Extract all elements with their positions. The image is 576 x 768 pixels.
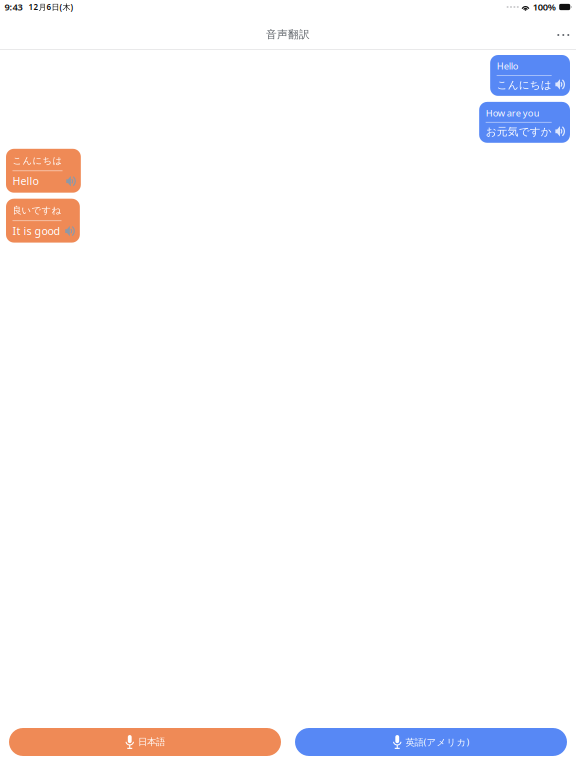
staticText: こんにちは [12, 155, 62, 166]
staticText: 良いですね [12, 205, 61, 216]
button[interactable]: Hello [490, 55, 570, 96]
staticText: 100% [533, 1, 556, 13]
staticText: 12月6日(木) [28, 2, 73, 12]
staticText: 音声翻訳 [266, 28, 310, 41]
staticText: Hello [12, 174, 38, 188]
staticText: How are you [486, 107, 540, 119]
button[interactable]: 英語(アメリカ) [295, 728, 567, 756]
button[interactable]: こんにちは [6, 149, 81, 193]
staticText: 英語(アメリカ) [406, 736, 470, 748]
staticText: It is good [12, 224, 60, 238]
button[interactable]: 日本語 [9, 728, 281, 756]
button[interactable]: More options [547, 23, 576, 46]
staticText: 日本語 [138, 736, 165, 748]
staticText: 9:43 [4, 1, 22, 13]
staticText: Hello [497, 60, 519, 72]
button[interactable]: How are you [479, 102, 570, 143]
staticText: お元気ですか [486, 125, 552, 138]
staticText: こんにちは [497, 78, 552, 91]
button[interactable]: 良いですね [6, 199, 80, 243]
